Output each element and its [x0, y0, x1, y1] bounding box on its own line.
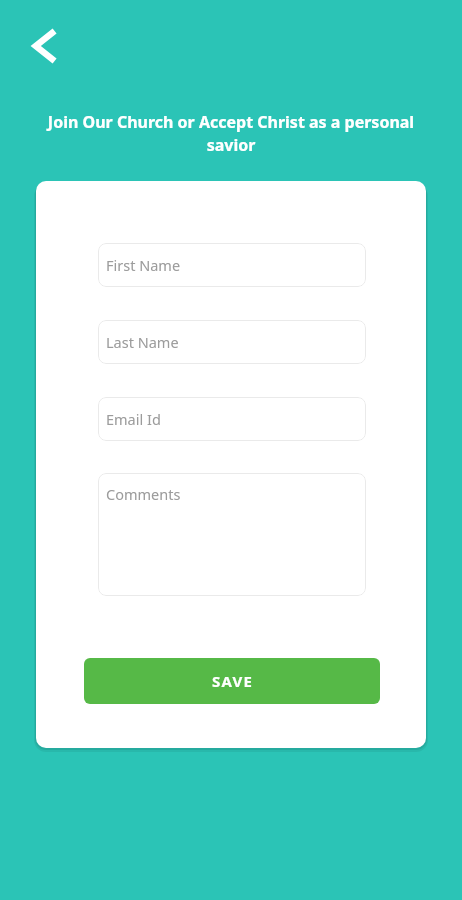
staticText: Comments [106, 484, 181, 504]
button[interactable]: Back [25, 25, 67, 67]
staticText: Join Our Church or Accept Christ as a pe… [26, 111, 436, 156]
staticText: Email Id [106, 409, 161, 429]
button[interactable]: Last Name [98, 320, 366, 364]
staticText: Last Name [106, 332, 179, 352]
button[interactable]: Comments [98, 473, 366, 596]
button[interactable]: First Name [98, 243, 366, 287]
button[interactable]: SAVE [84, 658, 380, 704]
staticText: SAVE [212, 671, 253, 691]
staticText: First Name [106, 255, 181, 275]
button[interactable]: Email Id [98, 397, 366, 441]
